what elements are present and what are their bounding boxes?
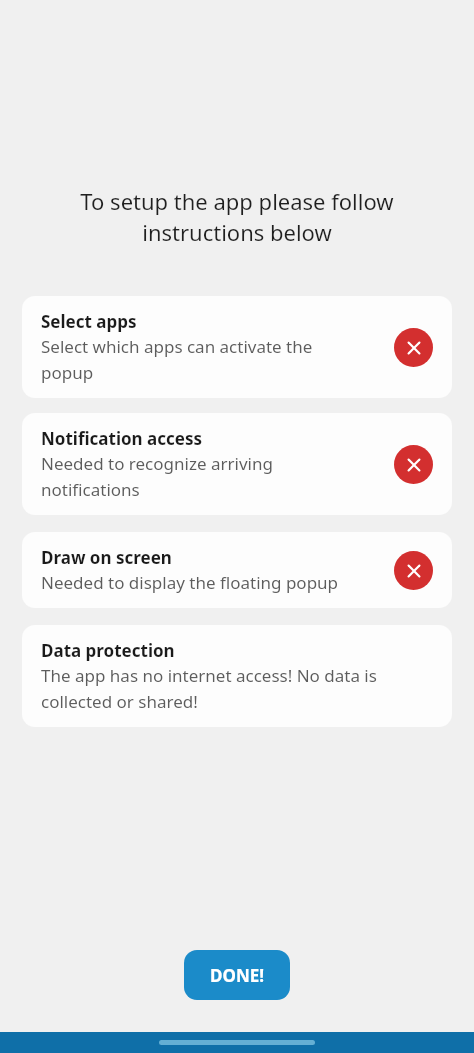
- staticText: Select apps: [41, 310, 137, 333]
- button[interactable]: Not granted: [394, 328, 433, 367]
- staticText: Needed to recognize arriving notificatio…: [41, 452, 301, 501]
- staticText: DONE!: [210, 964, 265, 987]
- staticText: Needed to display the floating popup: [41, 571, 339, 594]
- button[interactable]: Not granted: [394, 445, 433, 484]
- staticText: The app has no internet access! No data …: [41, 664, 426, 713]
- button[interactable]: DONE!: [184, 950, 290, 1000]
- staticText: To setup the app please follow instructi…: [22, 186, 452, 248]
- staticText: Data protection: [41, 639, 175, 662]
- staticText: Notification access: [41, 427, 203, 450]
- button[interactable]: Draw on screen: [22, 532, 452, 608]
- button[interactable]: Data protection: [22, 625, 452, 727]
- staticText: Draw on screen: [41, 546, 172, 569]
- button[interactable]: Notification access: [22, 413, 452, 515]
- button[interactable]: Not granted: [394, 551, 433, 590]
- staticText: Select which apps can activate the popup: [41, 335, 341, 384]
- button[interactable]: Select apps: [22, 296, 452, 398]
